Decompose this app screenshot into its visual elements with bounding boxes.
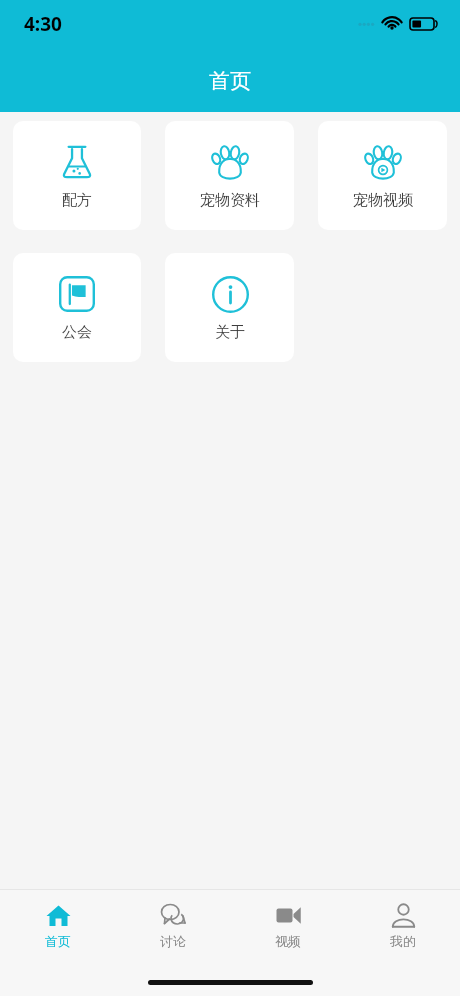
staticText: 宠物视频 bbox=[353, 191, 413, 210]
button[interactable]: 宠物视频 bbox=[318, 121, 447, 230]
button[interactable]: 关于 bbox=[165, 253, 294, 362]
staticText: 讨论 bbox=[160, 933, 186, 949]
staticText: 首页 bbox=[209, 68, 251, 94]
button[interactable]: 宠物资料 bbox=[165, 121, 294, 230]
staticText: 公会 bbox=[62, 323, 92, 342]
staticText: 我的 bbox=[390, 933, 416, 949]
button[interactable]: 公会 bbox=[13, 253, 141, 362]
staticText: 视频 bbox=[275, 933, 301, 949]
staticText: 4:30 bbox=[24, 11, 62, 37]
staticText: 宠物资料 bbox=[200, 191, 260, 210]
button[interactable]: 视频 bbox=[230, 889, 345, 961]
button[interactable]: 配方 bbox=[13, 121, 141, 230]
staticText: 首页 bbox=[45, 933, 71, 949]
button[interactable]: 讨论 bbox=[115, 889, 230, 961]
button[interactable]: 我的 bbox=[345, 889, 460, 961]
staticText: 关于 bbox=[215, 323, 245, 342]
button[interactable]: 首页 bbox=[0, 889, 115, 961]
staticText: 配方 bbox=[62, 191, 92, 210]
